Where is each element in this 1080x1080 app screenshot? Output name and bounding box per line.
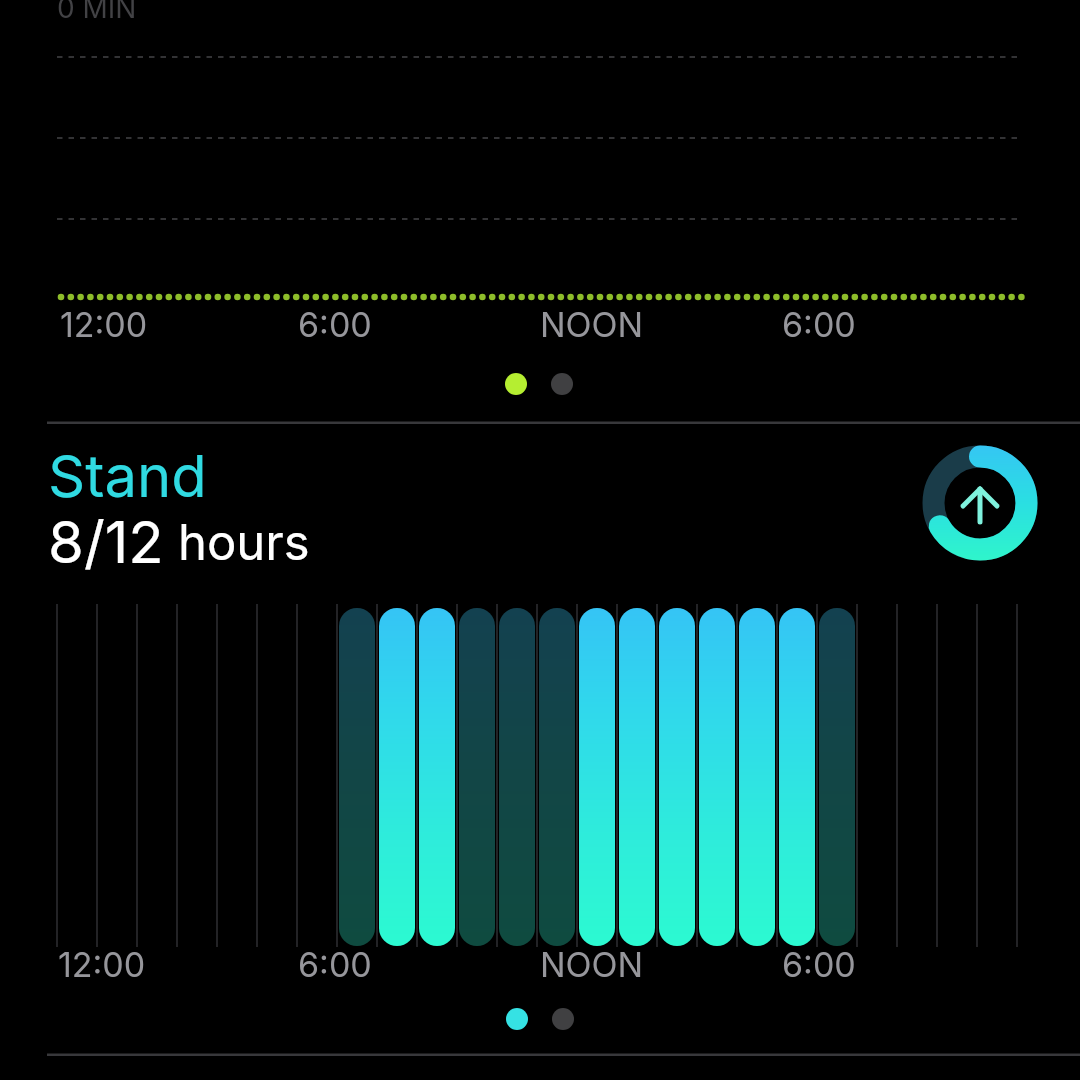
staticText: 12:00: [58, 944, 146, 985]
staticText: 12:00: [60, 304, 148, 345]
staticText: Stand: [48, 441, 207, 511]
staticText: 6:00: [298, 944, 372, 985]
staticText: hours: [178, 513, 310, 572]
staticText: NOON: [540, 304, 644, 345]
staticText: 8/12: [48, 507, 164, 577]
staticText: NOON: [540, 944, 644, 985]
staticText: 6:00: [782, 944, 856, 985]
staticText: 6:00: [782, 304, 856, 345]
staticText: 6:00: [298, 304, 372, 345]
staticText: 0 MIN: [57, 0, 137, 25]
